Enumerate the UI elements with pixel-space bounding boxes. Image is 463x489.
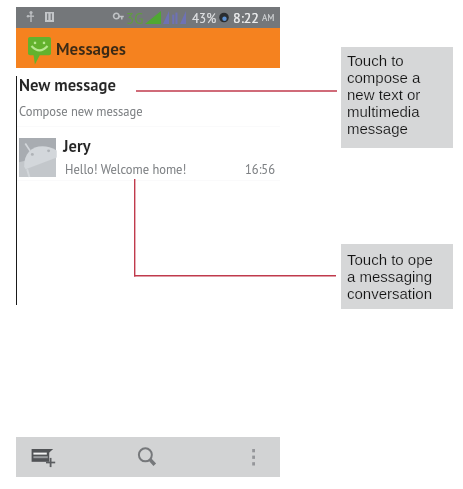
staticText: Messages	[56, 38, 126, 60]
button[interactable]: Jery	[16, 128, 280, 180]
staticText: 43%	[192, 10, 217, 27]
staticText: 3G	[126, 9, 144, 28]
button[interactable]: New message	[16, 70, 280, 122]
staticText: Jery	[63, 135, 91, 156]
button[interactable]: Search	[128, 439, 172, 475]
staticText: Compose new message	[19, 103, 143, 119]
staticText: message	[347, 120, 408, 137]
staticText: 8:22	[233, 9, 259, 27]
staticText: New message	[19, 74, 116, 96]
staticText: new text or	[347, 86, 421, 103]
staticText: Hello! Welcome home!	[65, 161, 187, 177]
staticText: a messaging	[347, 268, 433, 285]
staticText: conversation	[347, 285, 433, 302]
button[interactable]: New message	[23, 439, 73, 475]
staticText: compose a	[347, 69, 421, 86]
button[interactable]: More options	[234, 439, 274, 475]
staticText: multimedia	[347, 103, 420, 120]
staticText: AM	[262, 12, 275, 24]
button[interactable]: Messages	[16, 28, 280, 68]
staticText: Touch to	[347, 52, 404, 69]
staticText: Touch to ope	[347, 251, 433, 268]
staticText: 16:56	[245, 161, 275, 177]
